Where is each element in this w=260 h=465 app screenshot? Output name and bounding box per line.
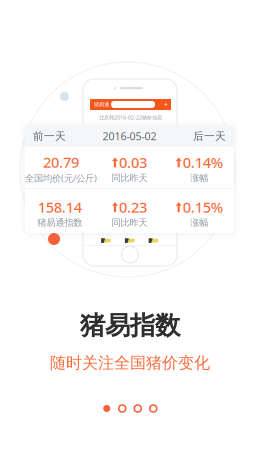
staticText: 同比昨天 (111, 172, 147, 184)
staticText: 同比昨天 (111, 217, 147, 228)
staticText: 北京和2016-02-22猪价信息 (99, 114, 162, 121)
staticText: 158.14 (38, 197, 82, 217)
staticText: 前一天 (33, 130, 66, 143)
staticText: 20.79 (43, 152, 79, 172)
staticText: 2016-05-02 (102, 129, 156, 143)
staticText: 后一天 (193, 130, 226, 143)
staticText: 0.23 (119, 197, 147, 217)
staticText: 0.15% (183, 197, 223, 217)
staticText: 猪易指数 (80, 310, 180, 341)
button[interactable]: 后一天 (193, 130, 226, 143)
button[interactable]: 前一天 (33, 130, 66, 143)
staticText: 0.14% (183, 153, 223, 172)
staticText: 猪易通指数 (37, 217, 82, 228)
staticText: 随时关注全国猪价变化 (50, 353, 210, 373)
staticText: 涨幅 (190, 172, 208, 184)
staticText: + (164, 100, 168, 109)
staticText: 0.03 (119, 153, 147, 172)
staticText: 猪易通 (94, 101, 109, 108)
staticText: 涨幅 (190, 217, 208, 228)
staticText: 全国均价(元/公斤) (25, 172, 97, 184)
